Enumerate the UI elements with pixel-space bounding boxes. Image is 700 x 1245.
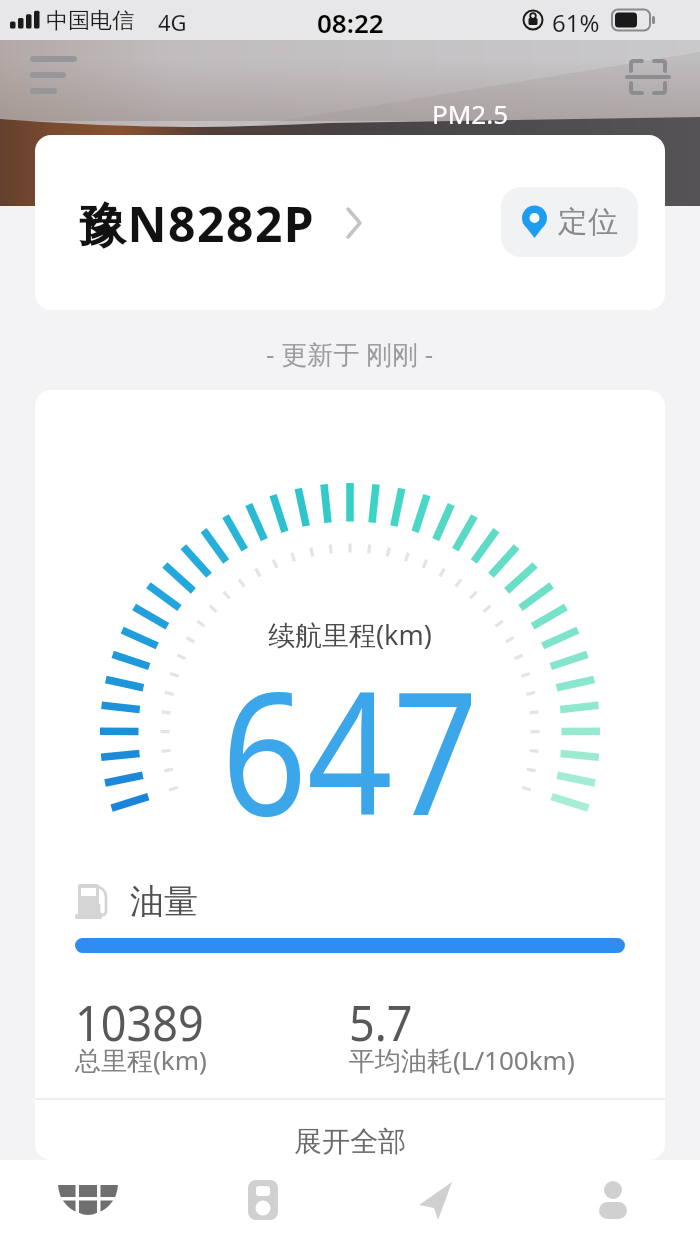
staticText: 647 xyxy=(221,633,478,843)
button[interactable] xyxy=(525,1160,700,1245)
button[interactable]: 展开全部 xyxy=(35,1119,665,1160)
button[interactable]: 豫N8282P xyxy=(35,135,665,310)
staticText: 平均油耗(L/100km) xyxy=(349,1042,575,1078)
button[interactable] xyxy=(0,1160,175,1245)
staticText: 4G xyxy=(158,7,187,37)
staticText: 08:22 xyxy=(317,5,384,40)
staticText: 定位 xyxy=(558,203,618,241)
button[interactable] xyxy=(350,1160,525,1245)
staticText: 展开全部 xyxy=(294,1124,406,1159)
staticText: 10389 xyxy=(75,988,204,1056)
staticText: 5.7 xyxy=(349,988,413,1056)
staticText: 中国电信 xyxy=(46,7,134,35)
button[interactable] xyxy=(175,1160,350,1245)
staticText: 油量 xyxy=(130,880,198,923)
staticText: 续航里程(km) xyxy=(268,616,432,653)
staticText: 总里程(km) xyxy=(75,1042,207,1078)
staticText: PM2.5 xyxy=(432,96,509,131)
staticText: 豫N8282P xyxy=(78,191,316,257)
staticText: 61% xyxy=(552,6,600,39)
staticText: - 更新于 刚刚 - xyxy=(266,336,434,372)
button[interactable]: 定位 xyxy=(501,187,638,257)
